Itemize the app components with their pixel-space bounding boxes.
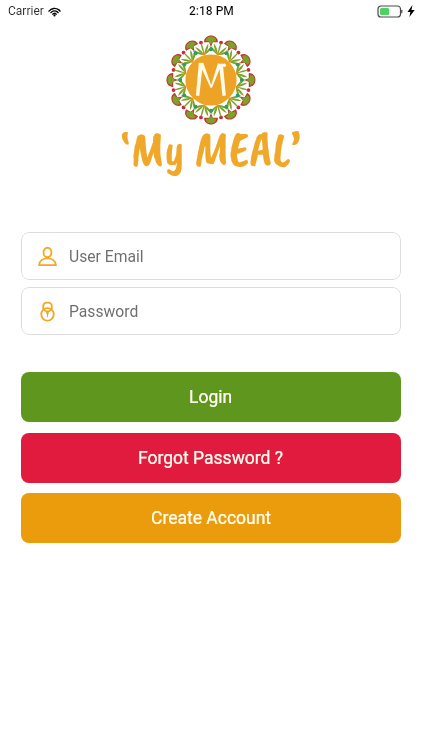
- button[interactable]: Forgot Password ?: [21, 433, 401, 483]
- button[interactable]: User Email: [21, 232, 401, 280]
- button[interactable]: Password: [21, 287, 401, 335]
- staticText: Login: [189, 387, 233, 408]
- staticText: Carrier: [8, 4, 44, 18]
- staticText: ‘My MEAL’: [120, 117, 302, 180]
- button[interactable]: Login: [21, 372, 401, 422]
- staticText: User Email: [69, 247, 144, 265]
- staticText: Forgot Password ?: [138, 448, 284, 469]
- staticText: Password: [69, 302, 139, 320]
- staticText: 2:18 PM: [189, 4, 234, 18]
- button[interactable]: Create Account: [21, 493, 401, 543]
- staticText: Create Account: [151, 508, 272, 529]
